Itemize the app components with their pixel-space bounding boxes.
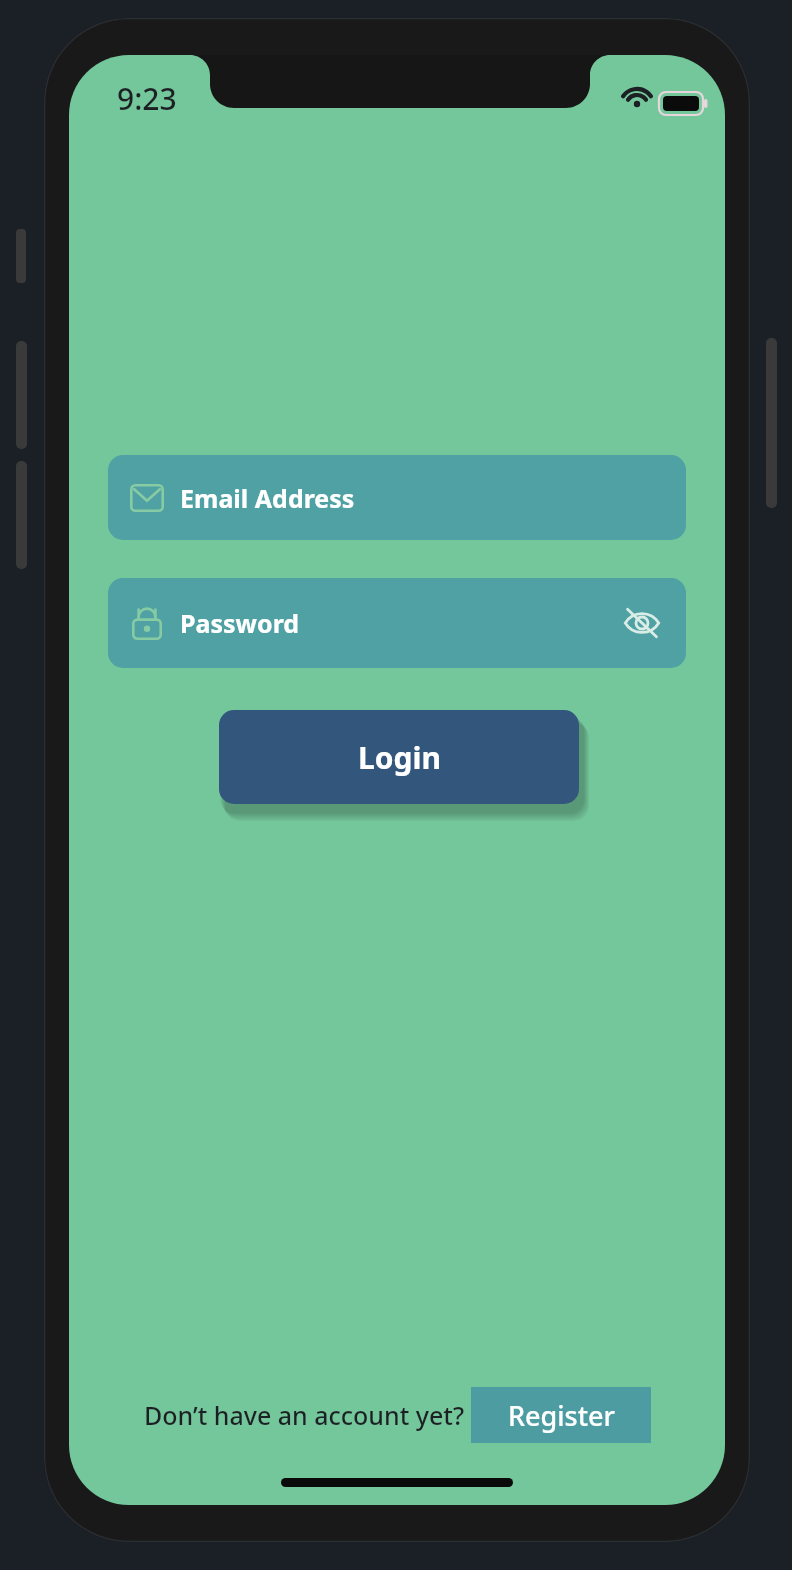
staticText: 9:23 — [117, 78, 177, 119]
button[interactable]: Show password — [616, 597, 668, 649]
button[interactable]: Password — [108, 578, 686, 668]
staticText: Password — [180, 606, 300, 640]
staticText: Register — [508, 1397, 615, 1434]
button[interactable]: Register — [471, 1387, 651, 1443]
button[interactable]: Email Address — [108, 455, 686, 540]
staticText: Email Address — [180, 481, 355, 515]
staticText: Login — [358, 737, 441, 778]
staticText: Don’t have an account yet? — [144, 1398, 465, 1432]
button[interactable]: Login — [219, 710, 579, 804]
